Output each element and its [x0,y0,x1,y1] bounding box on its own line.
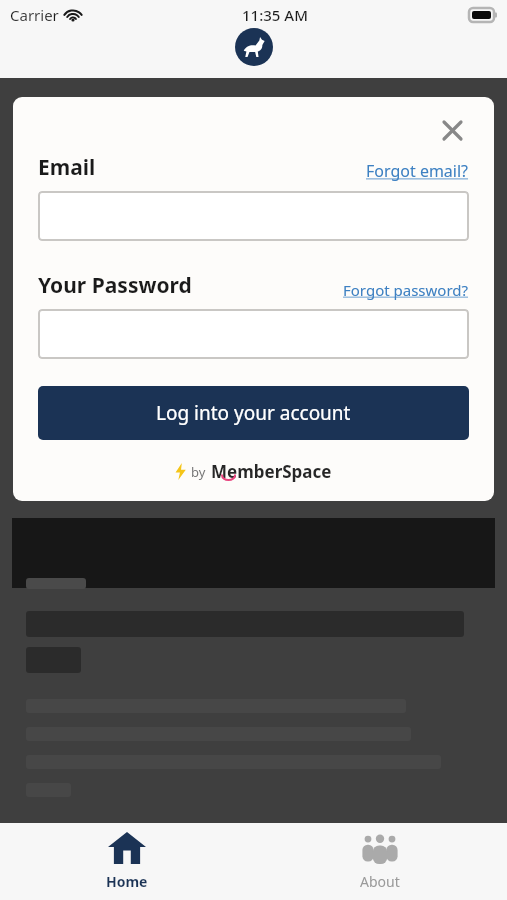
button[interactable]: by [38,460,469,483]
staticText: 11:35 AM [242,5,308,25]
staticText: MemberSpace [211,460,332,483]
staticText: Home [106,872,148,891]
button[interactable]: Close [435,113,469,147]
button[interactable]: Forgot email? [366,160,469,182]
staticText: by [191,463,206,481]
button[interactable]: Forgot password? [343,280,469,300]
staticText: Your Password [38,271,192,300]
button[interactable] [38,309,469,359]
button[interactable]: App logo [235,28,273,66]
button[interactable]: Log into your account [38,386,469,440]
staticText: Carrier [10,5,59,25]
button[interactable] [38,191,469,241]
button[interactable]: Home [0,823,253,900]
staticText: Log into your account [156,400,351,426]
staticText: Forgot email? [366,160,469,182]
button[interactable]: About [253,823,507,900]
staticText: Forgot password? [343,280,469,300]
staticText: Email [38,153,96,182]
staticText: About [360,872,400,891]
